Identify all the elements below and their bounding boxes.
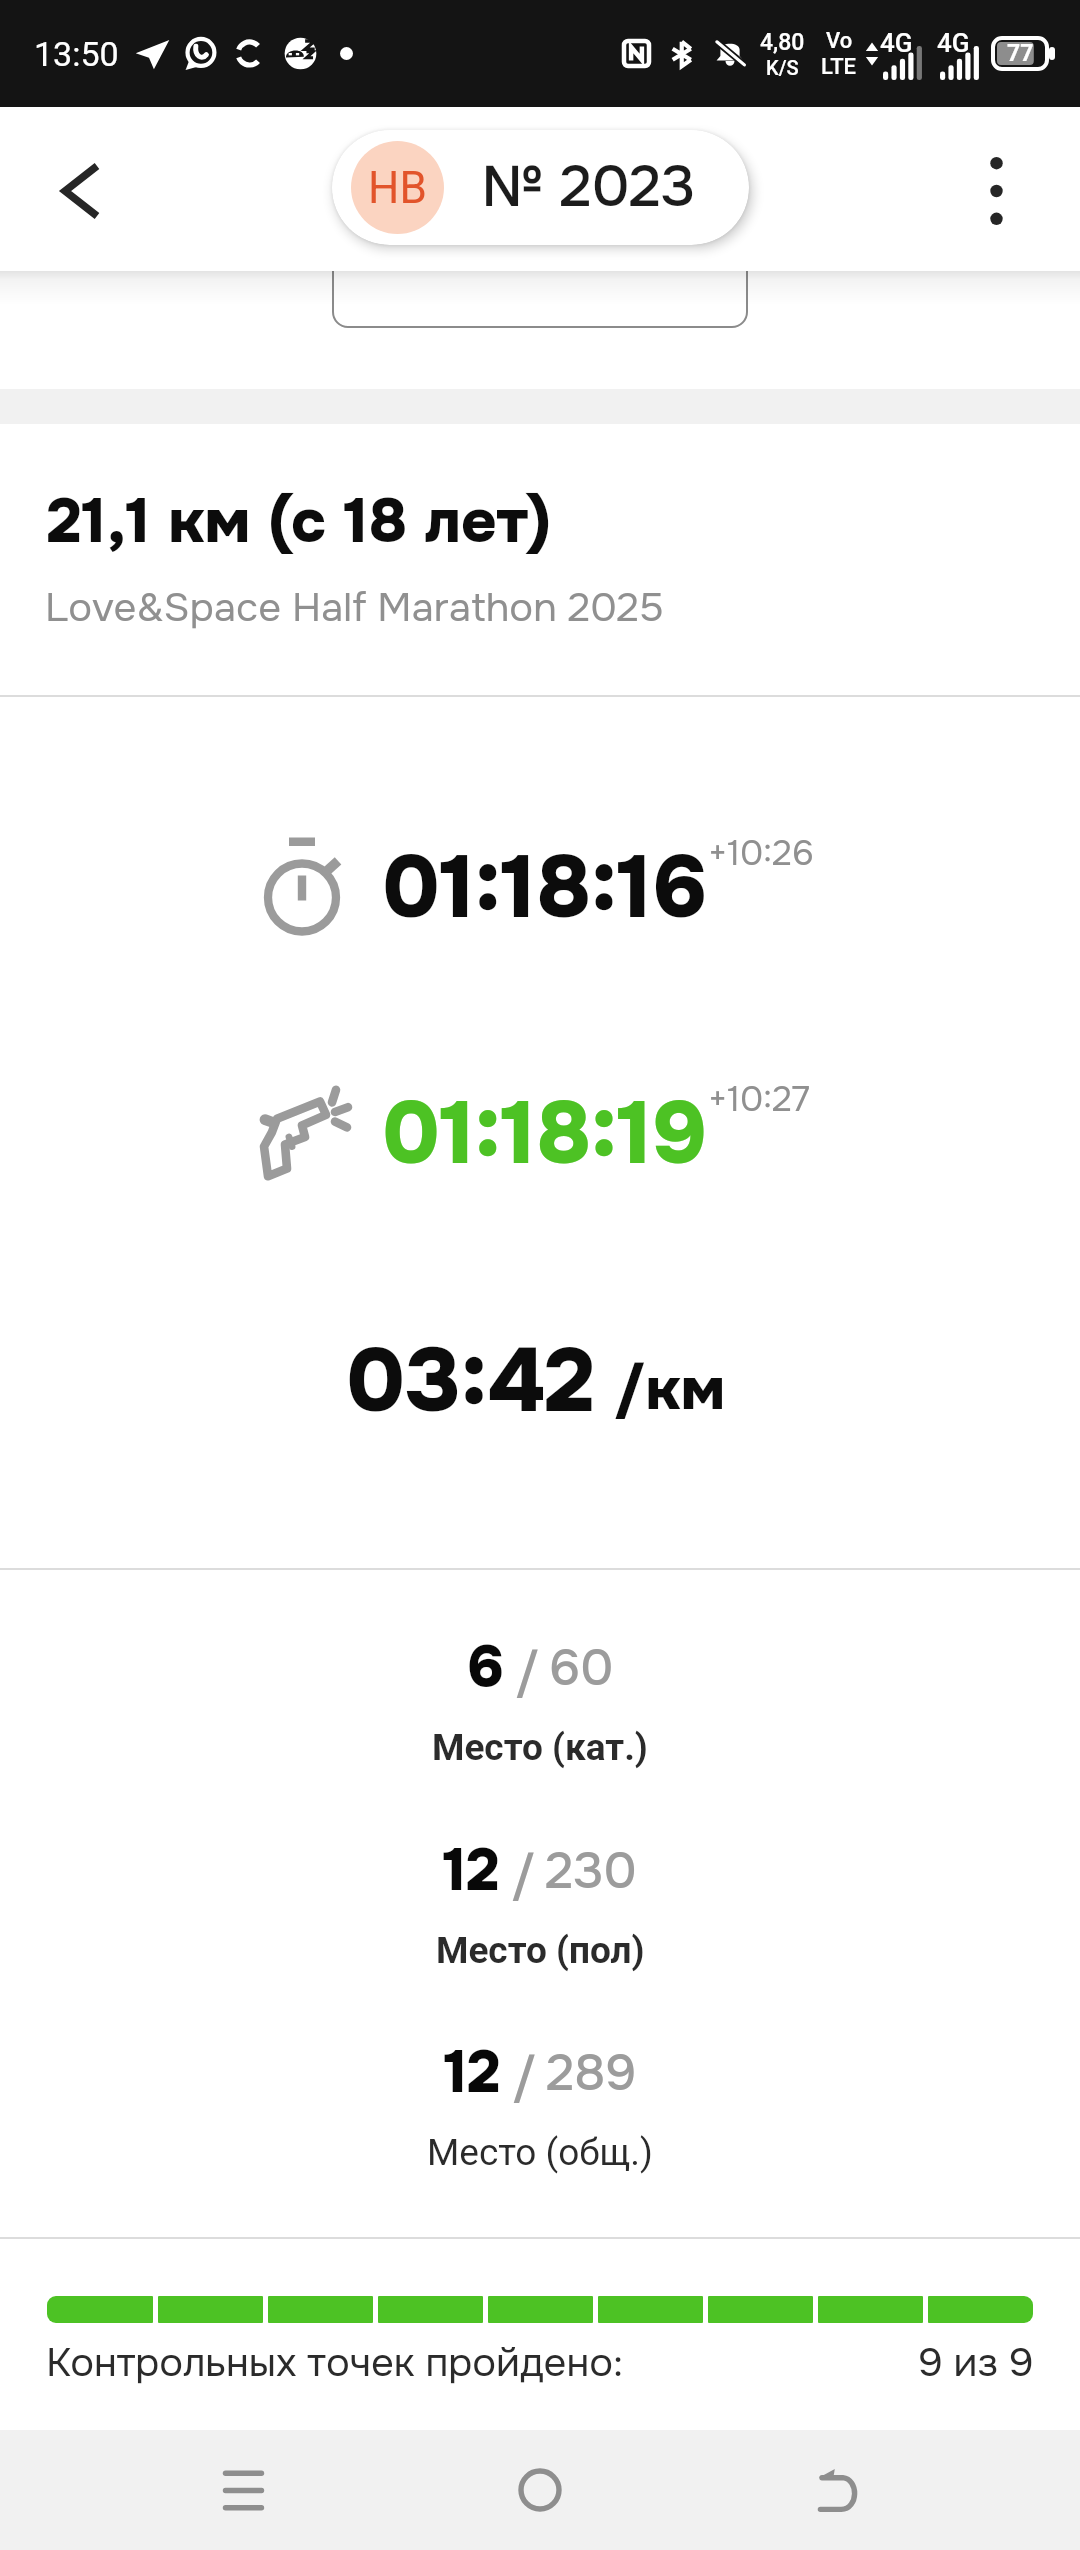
staticText: /км [614,1351,725,1428]
button[interactable]: Back [26,136,136,246]
button[interactable]: HB [332,130,749,245]
staticText: / [512,2046,537,2110]
staticText: 13:50 [34,34,119,74]
staticText: 12 [443,1833,500,1908]
staticText: 230 [545,1839,637,1903]
staticText: Место (кат.) [432,1726,648,1769]
staticText: Love&Space Half Marathon 2025 [45,582,664,633]
button[interactable]: Home [485,2435,595,2545]
staticText: +10:27 [708,1077,810,1122]
staticText: 01:18:19 [382,1078,708,1190]
button[interactable]: Back [783,2435,893,2545]
staticText: 21,1 км (с 18 лет) [47,482,552,561]
button[interactable]: More options [941,136,1051,246]
staticText: 4G [880,28,913,58]
staticText: 12 [444,2035,501,2110]
staticText: LTE [821,54,857,80]
button[interactable]: Recent apps [188,2435,298,2545]
staticText: Контрольных точек пройдено: [46,2337,624,2388]
staticText: / [515,1641,540,1705]
staticText: 77 [1007,40,1034,67]
staticText: Место (пол) [436,1929,645,1972]
staticText: K/S [766,56,799,79]
staticText: 9 из 9 [918,2337,1034,2388]
staticText: 6 [467,1630,504,1705]
staticText: № 2023 [483,151,696,224]
staticText: 4G [937,28,970,58]
staticText: 01:18:16 [382,832,708,944]
staticText: +10:26 [708,831,814,876]
staticText: 4,80 [760,29,805,56]
staticText: HB [368,162,427,214]
staticText: 03:42 [346,1324,596,1439]
staticText: 60 [549,1636,614,1700]
staticText: Vo [826,28,853,54]
staticText: / [511,1844,536,1908]
staticText: Место (общ.) [427,2131,653,2174]
staticText: 289 [546,2041,637,2105]
